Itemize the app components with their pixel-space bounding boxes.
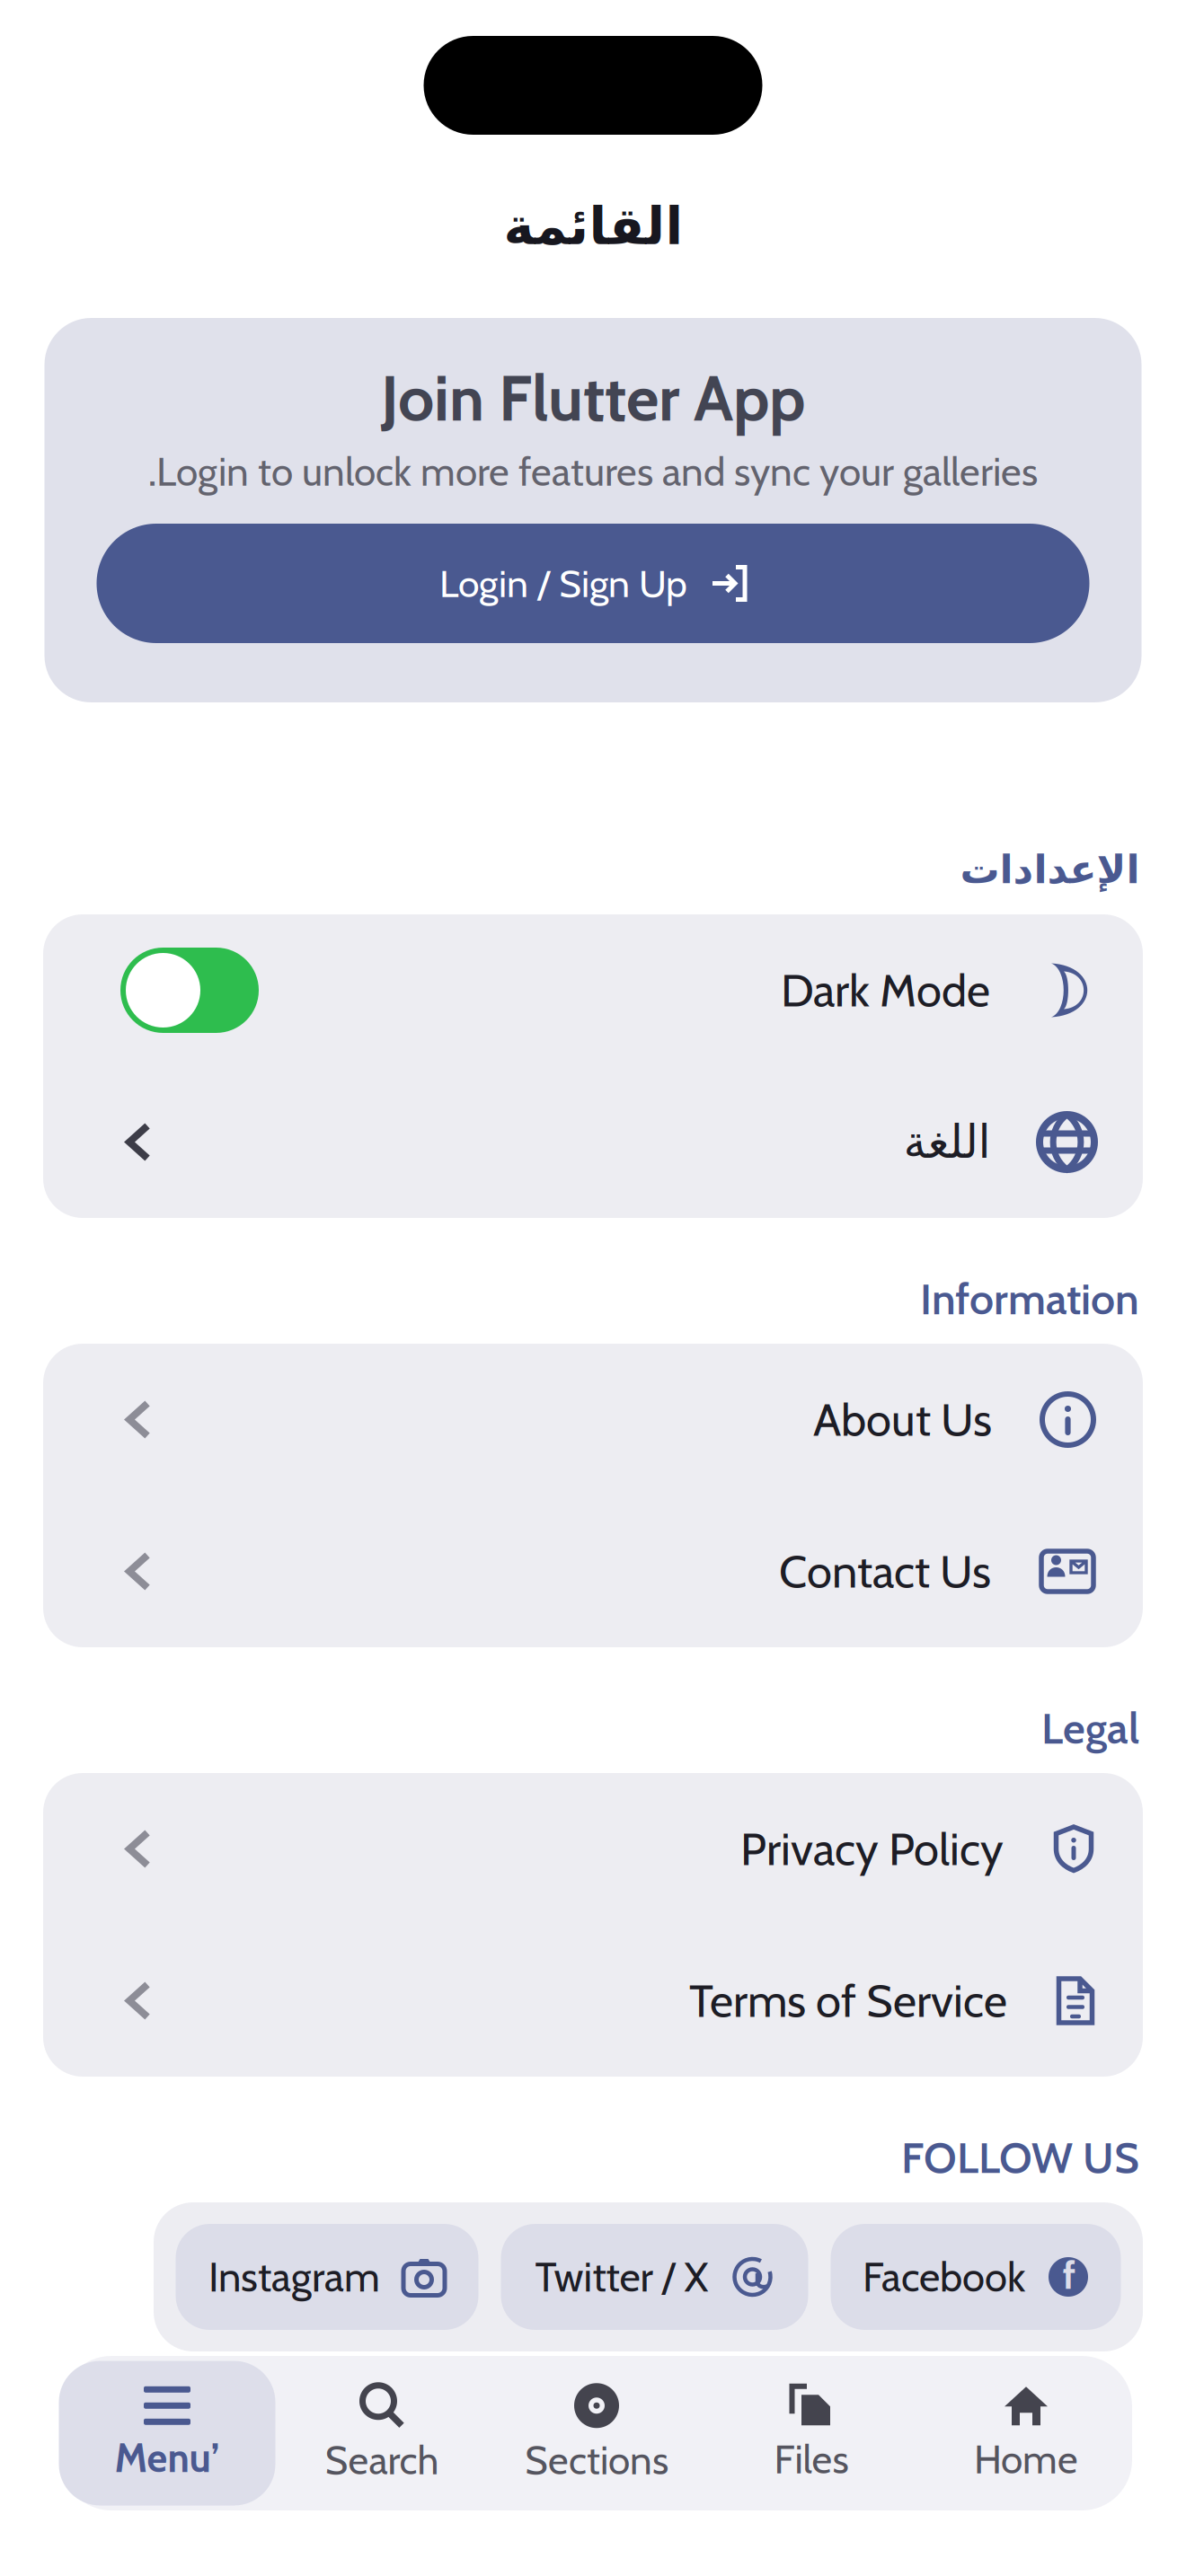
staticText: Sections — [525, 2436, 668, 2484]
staticText: FOLLOW US — [901, 2131, 1139, 2184]
button[interactable]: اللغة — [43, 1066, 1143, 1218]
button[interactable]: Dark Mode — [43, 914, 1143, 1066]
button[interactable]: Search — [274, 2361, 490, 2505]
staticText: الإعدادات — [960, 846, 1139, 892]
staticText: Files — [774, 2435, 849, 2483]
button[interactable]: Login / Sign Up — [97, 524, 1089, 643]
staticText: .Login to unlock more features and sync … — [148, 448, 1038, 496]
staticText: Legal — [1041, 1702, 1139, 1754]
staticText: Dark Mode — [781, 963, 990, 1018]
staticText: Facebook — [863, 2252, 1025, 2302]
staticText: Home — [974, 2435, 1078, 2483]
button[interactable]: Sections — [488, 2361, 705, 2505]
button[interactable]: Facebook — [831, 2224, 1121, 2330]
staticText: Search — [325, 2436, 439, 2484]
staticText: Twitter / X — [535, 2252, 708, 2302]
button[interactable]: Instagram — [176, 2224, 478, 2330]
button[interactable]: Home — [918, 2361, 1134, 2505]
button[interactable]: About Us — [43, 1344, 1143, 1495]
staticText: Information — [920, 1273, 1139, 1325]
button[interactable]: Files — [703, 2361, 920, 2505]
button[interactable]: Terms of Service — [43, 1925, 1143, 2077]
staticText: القائمة — [503, 196, 683, 256]
staticText: Menu’ — [115, 2434, 220, 2482]
button[interactable]: Menu’ — [59, 2361, 275, 2505]
staticText: f — [1062, 2252, 1076, 2298]
staticText: Terms of Service — [689, 1973, 1007, 2028]
button[interactable]: Contact Us — [43, 1495, 1143, 1647]
button[interactable]: Twitter / X — [501, 2224, 808, 2330]
button[interactable]: Privacy Policy — [43, 1773, 1143, 1925]
staticText: About Us — [813, 1392, 992, 1447]
staticText: اللغة — [903, 1116, 990, 1169]
staticText: Contact Us — [779, 1544, 991, 1599]
staticText: Privacy Policy — [740, 1821, 1004, 1877]
staticText: Instagram — [208, 2252, 380, 2302]
staticText: Join Flutter App — [381, 359, 805, 437]
staticText: Login / Sign Up — [439, 560, 687, 607]
